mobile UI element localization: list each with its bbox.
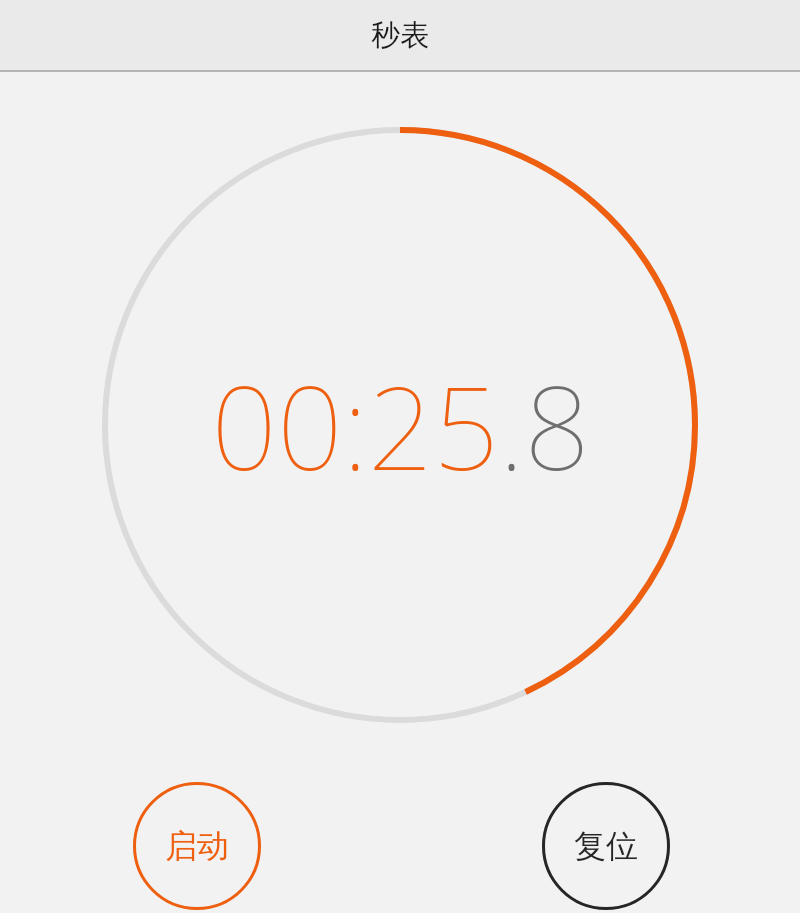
staticText: 启动 (165, 826, 229, 866)
staticText: 00:25.8 (211, 347, 590, 504)
staticText: 复位 (574, 826, 638, 866)
button[interactable]: 启动 (133, 782, 261, 910)
staticText: 秒表 (371, 17, 429, 54)
button[interactable]: 复位 (542, 782, 670, 910)
